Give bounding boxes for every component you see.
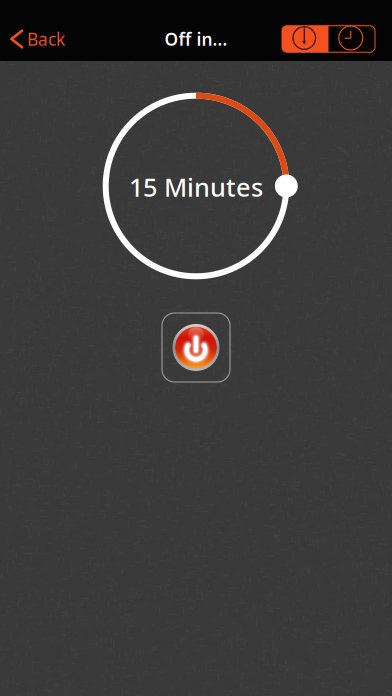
staticText: 15 Minutes (129, 170, 263, 204)
button[interactable]: Power (162, 313, 230, 382)
button[interactable]: Timer (282, 26, 328, 52)
button[interactable]: 15 Minutes (0, 93, 392, 286)
button[interactable]: Back (0, 19, 75, 58)
staticText: Back (27, 27, 65, 50)
staticText: Off in... (164, 27, 227, 50)
button[interactable]: Clock (328, 26, 375, 52)
